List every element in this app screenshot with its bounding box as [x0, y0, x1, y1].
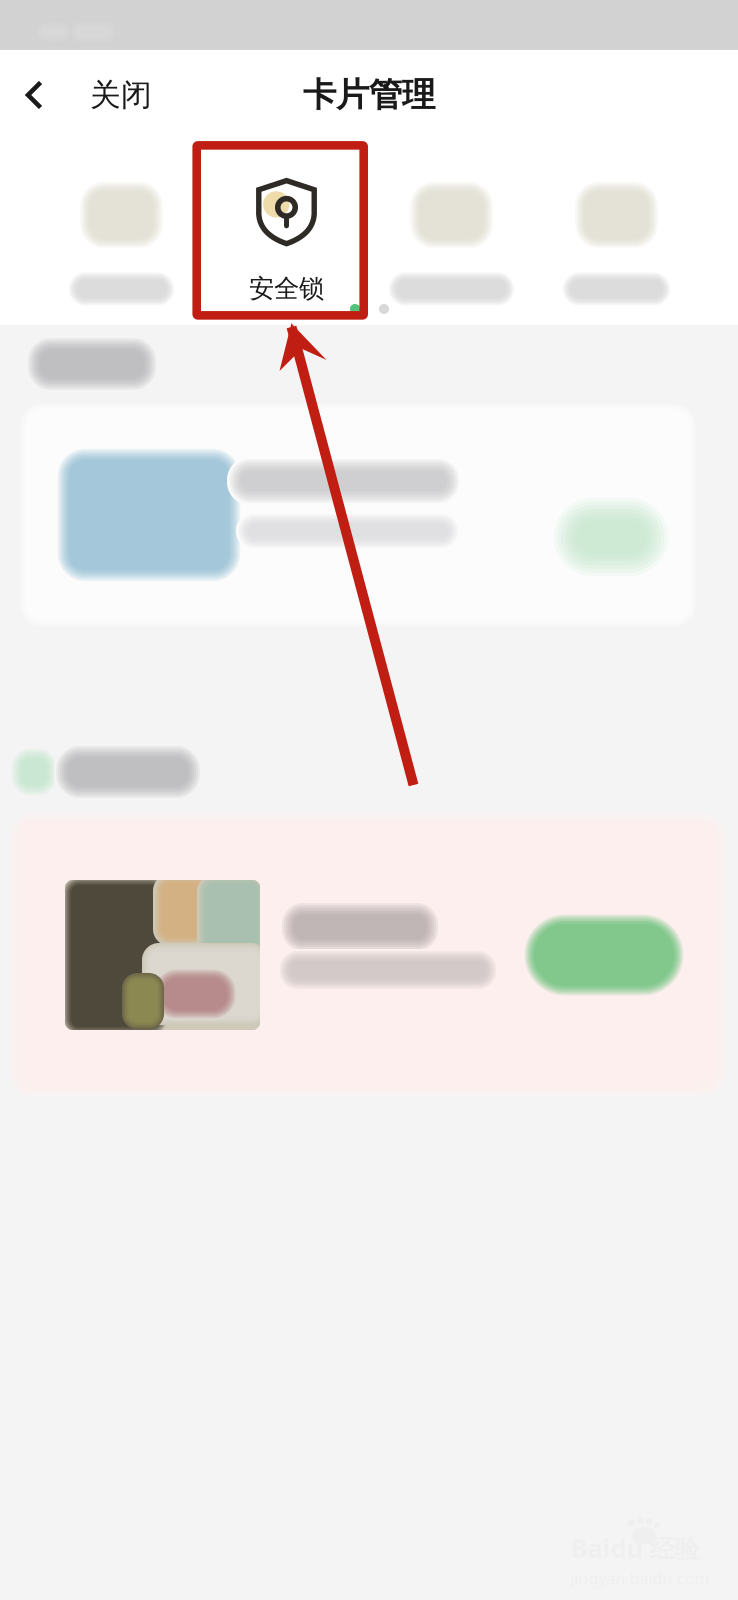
button[interactable]: 卡片 [534, 170, 699, 310]
button[interactable] [28, 411, 688, 619]
staticText: 安全锁 [249, 273, 324, 304]
button[interactable]: 安全锁 [204, 170, 369, 310]
staticText: 卡片管理 [303, 74, 435, 115]
staticText: 关闭 [90, 76, 152, 114]
button[interactable]: 卡片 [39, 170, 204, 310]
button[interactable] [22, 826, 712, 1084]
button[interactable]: 关闭 [0, 55, 186, 135]
button[interactable]: 卡片 [369, 170, 534, 310]
